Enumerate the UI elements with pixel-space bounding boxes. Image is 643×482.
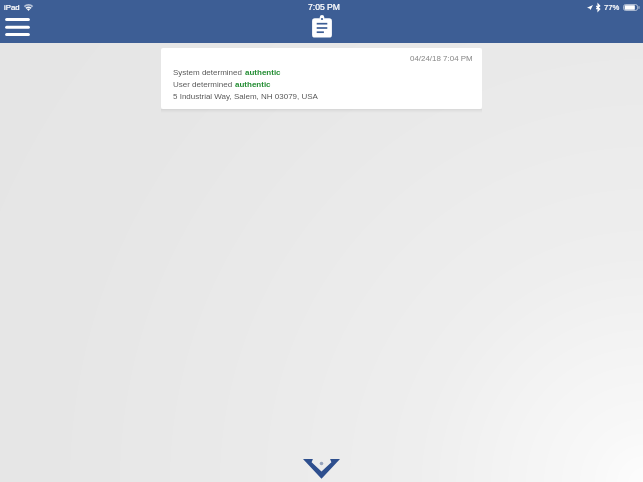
button[interactable]: Menu (0, 13, 36, 41)
staticText: User determined (173, 80, 235, 89)
staticText: authentic (235, 80, 271, 89)
staticText: authentic (245, 68, 281, 77)
staticText: iPad (4, 3, 20, 12)
staticText: 5 Industrial Way, Salem, NH 03079, USA (173, 92, 318, 101)
staticText: 77% (604, 3, 620, 12)
staticText: 04/24/18 7:04 PM (410, 54, 473, 63)
staticText: System determined (173, 68, 245, 77)
staticText: 7:05 PM (308, 2, 341, 12)
button[interactable]: Reports (309, 14, 335, 40)
button[interactable]: 04/24/18 7:04 PM (161, 48, 482, 109)
